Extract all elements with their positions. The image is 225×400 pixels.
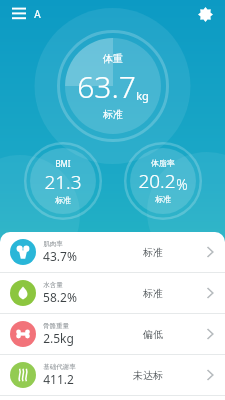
staticText: 体重 — [103, 52, 123, 65]
staticText: 20.2 — [138, 168, 176, 194]
button[interactable]: 肌肉率 — [0, 232, 225, 272]
staticText: 基础代谢率 — [43, 363, 76, 371]
staticText: BMI — [55, 158, 71, 169]
staticText: 骨骼重量 — [43, 322, 69, 330]
staticText: 标准 — [143, 246, 163, 259]
staticText: kg — [136, 88, 149, 103]
button[interactable]: BMI — [24, 142, 102, 220]
staticText: 58.2% — [43, 289, 77, 305]
button[interactable]: Settings — [193, 2, 217, 26]
button[interactable]: 水含量 — [0, 273, 225, 313]
staticText: 水含量 — [43, 281, 63, 289]
staticText: A — [34, 7, 41, 21]
staticText: 2.5kg — [43, 330, 74, 346]
button[interactable]: Menu — [8, 3, 30, 25]
staticText: 21.3 — [44, 169, 82, 195]
staticText: 肌肉率 — [43, 240, 63, 248]
staticText: 411.2 — [43, 371, 74, 387]
staticText: 标准 — [55, 195, 71, 205]
staticText: 63.7 — [77, 66, 136, 107]
staticText: % — [176, 175, 188, 194]
button[interactable]: 体脂率 — [124, 142, 202, 220]
staticText: 偏低 — [143, 328, 163, 341]
staticText: 体脂率 — [151, 158, 175, 168]
button[interactable]: 骨骼重量 — [0, 314, 225, 354]
staticText: 标准 — [143, 287, 163, 300]
button[interactable]: 体重 — [57, 30, 169, 142]
staticText: 未达标 — [133, 369, 163, 382]
button[interactable]: 基础代谢率 — [0, 355, 225, 395]
staticText: 标准 — [103, 108, 123, 121]
staticText: 43.7% — [43, 248, 77, 264]
staticText: 标准 — [155, 194, 171, 204]
